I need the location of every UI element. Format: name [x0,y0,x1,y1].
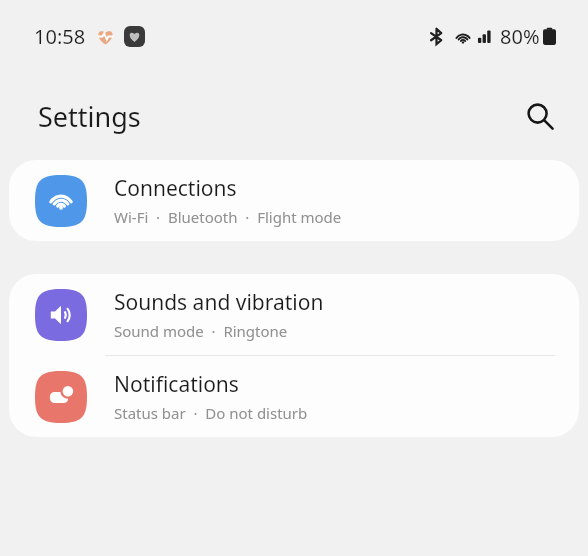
staticText: Sound mode · Ringtone [114,321,288,341]
button[interactable]: Notifications [9,356,579,437]
button[interactable]: Search [518,94,562,138]
button[interactable]: Sounds and vibration [9,274,579,355]
staticText: Connections [114,174,237,203]
staticText: 80% [500,23,540,50]
staticText: Settings [38,98,141,135]
button[interactable]: Connections [9,160,579,241]
staticText: Wi-Fi · Bluetooth · Flight mode [114,207,342,227]
staticText: Notifications [114,370,239,399]
staticText: 10:58 [34,23,86,50]
staticText: Sounds and vibration [114,288,324,317]
staticText: Status bar · Do not disturb [114,403,308,423]
